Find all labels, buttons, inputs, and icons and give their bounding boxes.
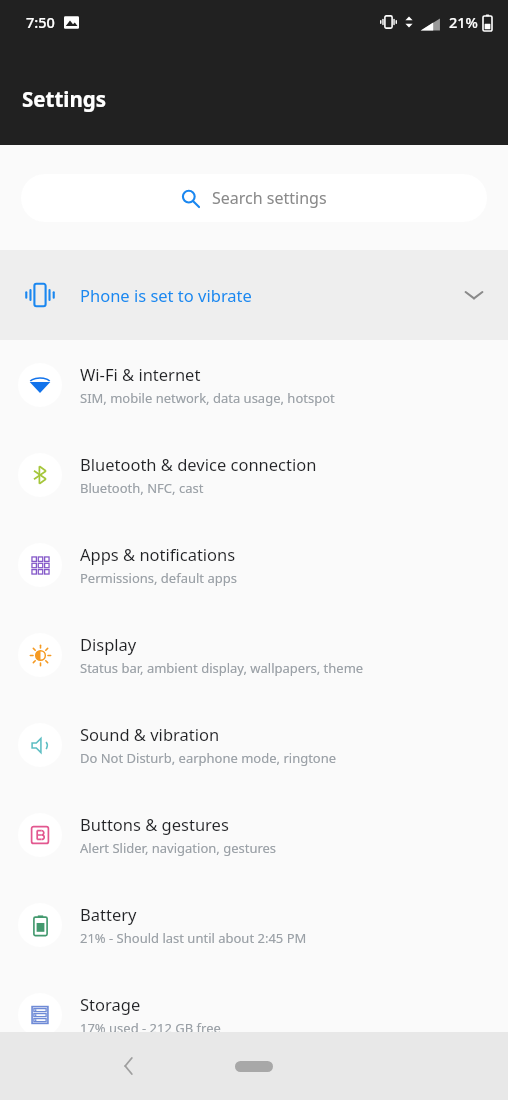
button[interactable]: Wi-Fi & internet (0, 340, 508, 430)
staticText: Phone is set to vibrate (80, 284, 252, 306)
staticText: 17% used - 212 GB free (80, 1019, 221, 1037)
staticText: Sound & vibration (80, 723, 220, 745)
staticText: Permissions, default apps (80, 569, 237, 587)
staticText: Do Not Disturb, earphone mode, ringtone (80, 749, 337, 767)
staticText: Settings (22, 85, 107, 113)
staticText: 21% (449, 12, 478, 32)
button[interactable]: Buttons & gestures (0, 790, 508, 880)
other: Expand (464, 289, 484, 301)
staticText: Status bar, ambient display, wallpapers,… (80, 659, 364, 677)
staticText: Search settings (212, 187, 327, 209)
staticText: SIM, mobile network, data usage, hotspot (80, 389, 335, 407)
staticText: 7:50 (26, 12, 55, 32)
button[interactable]: Home (224, 1049, 284, 1083)
button[interactable]: Apps & notifications (0, 520, 508, 610)
staticText: Buttons & gestures (80, 813, 229, 835)
button[interactable]: Sound & vibration (0, 700, 508, 790)
staticText: Bluetooth & device connection (80, 453, 317, 475)
button[interactable]: Display (0, 610, 508, 700)
button[interactable]: Storage (0, 970, 508, 1060)
staticText: 21% - Should last until about 2:45 PM (80, 929, 307, 947)
staticText: Storage (80, 993, 141, 1015)
button[interactable]: Phone is set to vibrate (0, 250, 508, 340)
staticText: Alert Slider, navigation, gestures (80, 839, 277, 857)
button[interactable]: Bluetooth & device connection (0, 430, 508, 520)
staticText: Wi-Fi & internet (80, 363, 201, 385)
button[interactable]: Search settings (21, 174, 487, 222)
staticText: Apps & notifications (80, 543, 236, 565)
staticText: Bluetooth, NFC, cast (80, 479, 204, 497)
button[interactable]: Back (108, 1046, 148, 1086)
button[interactable]: Battery (0, 880, 508, 970)
staticText: Battery (80, 903, 137, 925)
staticText: Display (80, 633, 137, 655)
